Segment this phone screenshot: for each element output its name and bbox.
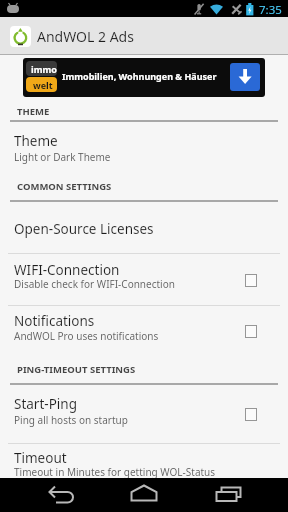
staticText: Notifications bbox=[14, 312, 95, 330]
staticText: welt bbox=[33, 79, 53, 91]
staticText: WIFI-Connection bbox=[14, 261, 120, 279]
button[interactable]: Theme bbox=[0, 122, 288, 178]
button[interactable] bbox=[10, 26, 31, 47]
staticText: AndWOL Pro uses notifications bbox=[14, 329, 159, 343]
staticText: Light or Dark Theme bbox=[14, 150, 111, 164]
staticText: Start-Ping bbox=[14, 395, 77, 413]
button[interactable] bbox=[40, 478, 80, 512]
staticText: AndWOL 2 Ads bbox=[37, 27, 134, 46]
button[interactable]: Notifications bbox=[0, 306, 288, 356]
button[interactable]: Timeout bbox=[0, 444, 288, 478]
staticText: Theme bbox=[14, 132, 58, 150]
staticText: Immobilien, Wohnungen & Häuser bbox=[62, 70, 217, 82]
button[interactable]: WIFI-Connection bbox=[0, 254, 288, 304]
staticText: COMMON SETTINGS bbox=[17, 180, 112, 193]
staticText: PING-TIMEOUT SETTINGS bbox=[17, 363, 136, 376]
button[interactable]: Open-Source Licenses bbox=[0, 203, 288, 253]
button[interactable] bbox=[206, 478, 246, 512]
staticText: Open-Source Licenses bbox=[14, 220, 154, 238]
staticText: Disable check for WIFI-Connection bbox=[14, 277, 175, 291]
staticText: immo bbox=[31, 63, 57, 75]
button[interactable]: Start-Ping bbox=[0, 385, 288, 442]
button[interactable]: immo bbox=[23, 58, 265, 97]
button[interactable] bbox=[124, 478, 164, 512]
staticText: Timeout in Minutes for getting WOL-Statu… bbox=[14, 465, 216, 479]
staticText: Ping all hosts on startup bbox=[14, 413, 128, 427]
staticText: THEME bbox=[17, 105, 50, 118]
staticText: Timeout bbox=[14, 449, 67, 467]
staticText: 7:35 bbox=[259, 2, 282, 18]
